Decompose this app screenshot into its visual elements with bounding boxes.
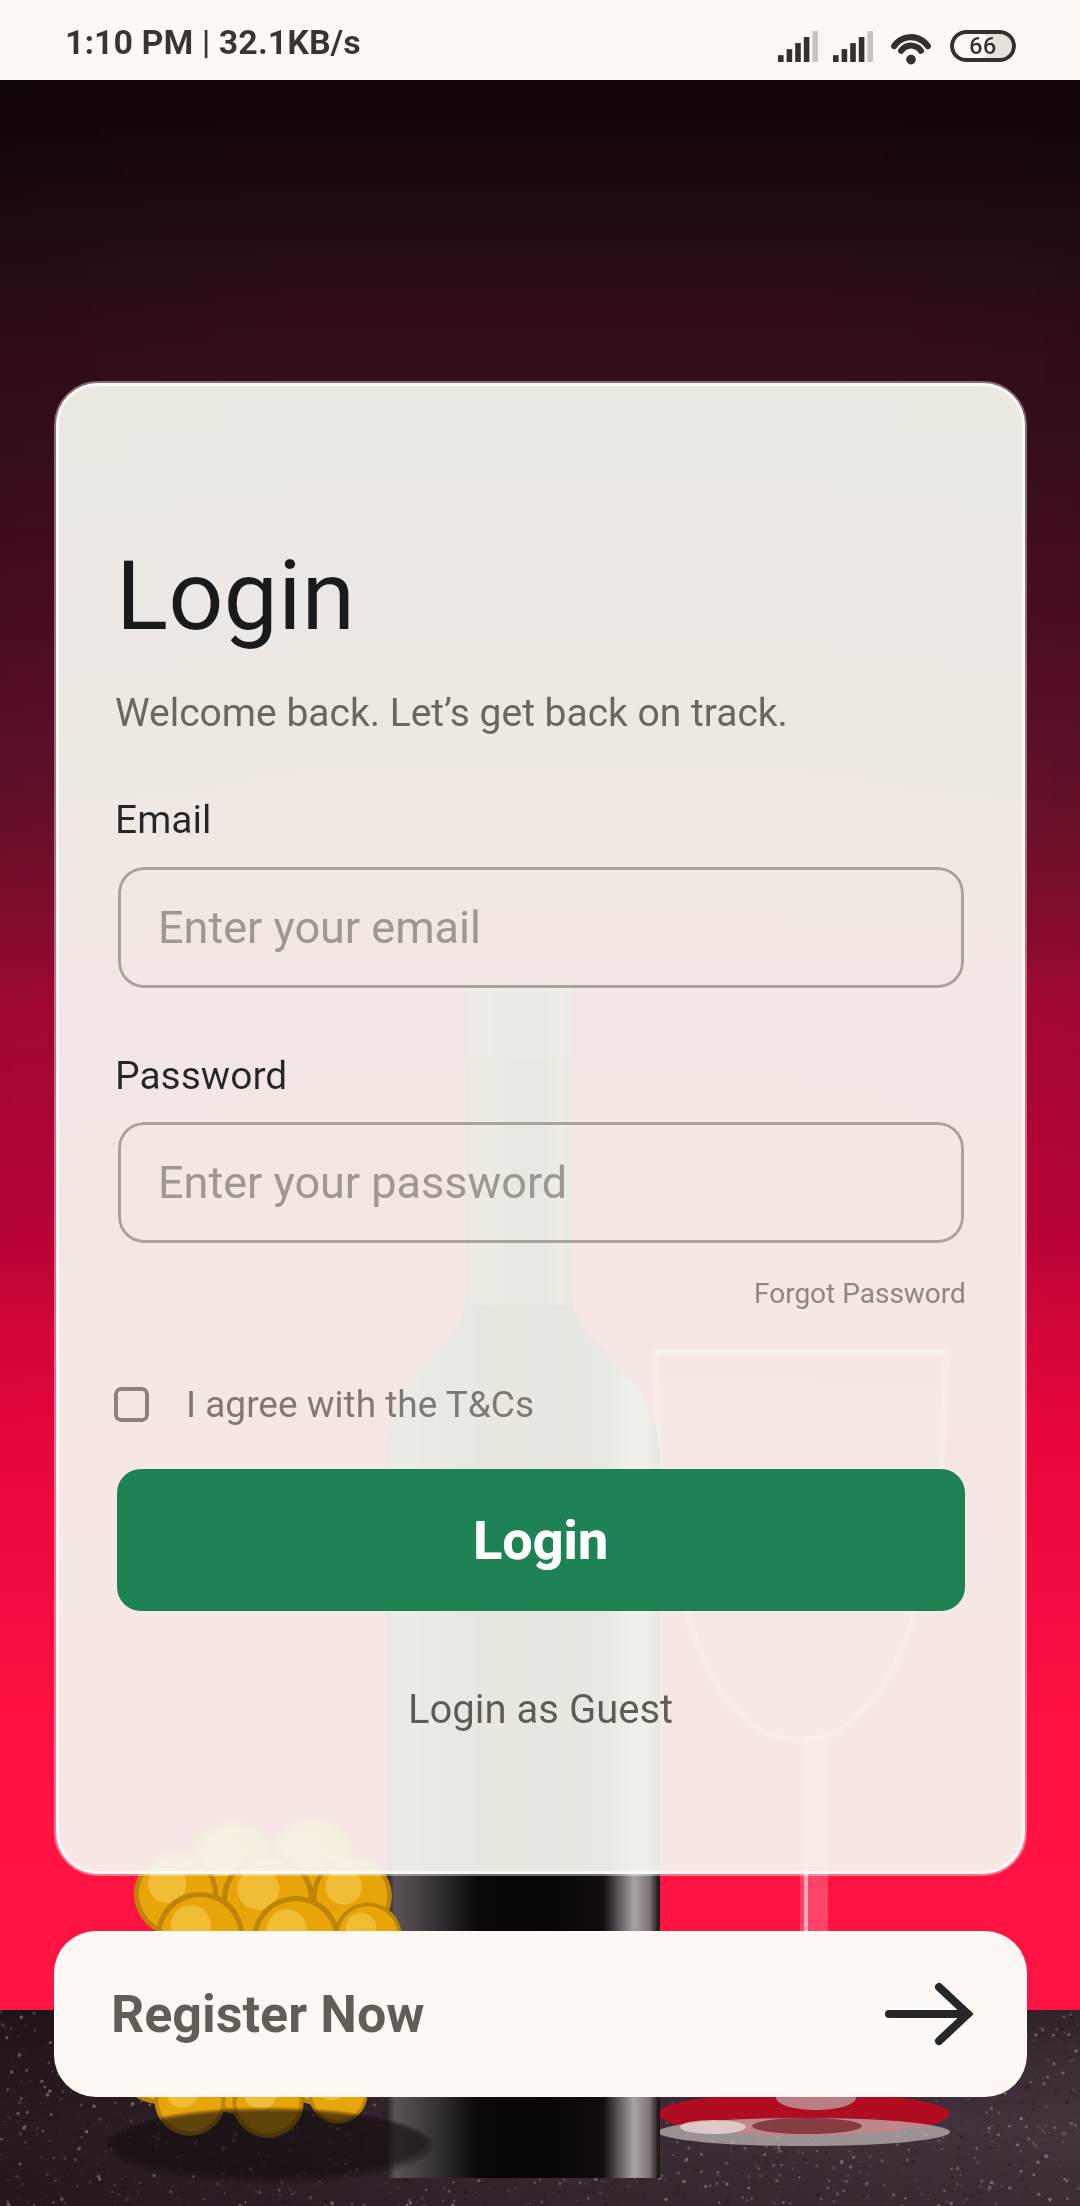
staticText: Email: [115, 797, 212, 843]
button[interactable]: Enter your email: [118, 867, 964, 988]
button[interactable]: I agree with the T&Cs: [114, 1375, 535, 1433]
button[interactable]: Login: [117, 1469, 965, 1611]
staticText: 1:10 PM | 32.1KB/s: [65, 22, 361, 62]
button[interactable]: Forgot Password: [664, 1270, 966, 1316]
staticText: Forgot Password: [754, 1277, 966, 1310]
button[interactable]: Enter your password: [118, 1122, 964, 1243]
staticText: Login: [116, 539, 356, 653]
staticText: Welcome back. Let’s get back on track.: [115, 690, 788, 736]
staticText: Enter your email: [158, 901, 481, 954]
button[interactable]: Register Now: [54, 1931, 1027, 2097]
staticText: Register Now: [111, 1984, 425, 2045]
staticText: Login: [473, 1509, 609, 1572]
button[interactable]: Login as Guest: [408, 1686, 674, 1733]
staticText: Password: [115, 1053, 288, 1099]
staticText: 66: [969, 32, 997, 60]
staticText: Enter your password: [158, 1156, 568, 1209]
staticText: I agree with the T&Cs: [186, 1383, 535, 1426]
